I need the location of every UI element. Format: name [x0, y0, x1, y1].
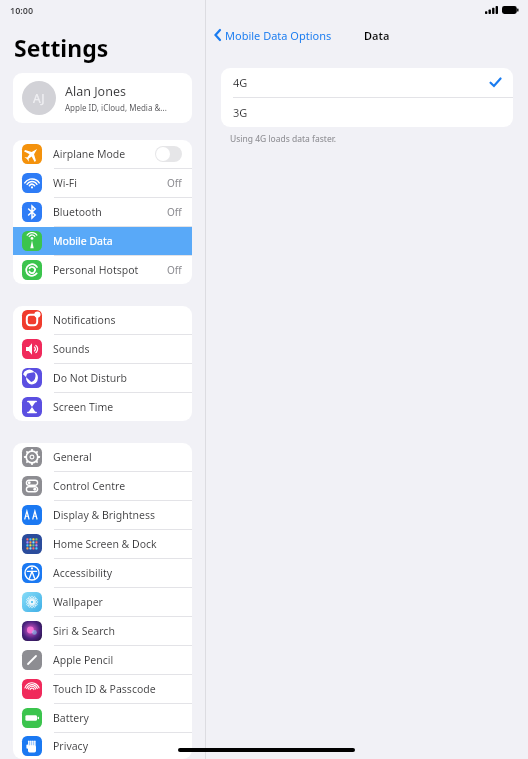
button[interactable]: Apple Pencil [13, 646, 192, 674]
staticText: Siri & Search [53, 624, 182, 638]
staticText: Off [167, 263, 182, 277]
button[interactable]: General [13, 443, 192, 471]
staticText: Wallpaper [53, 595, 182, 609]
staticText: Screen Time [53, 400, 182, 414]
staticText: Settings [14, 32, 109, 63]
staticText: Accessibility [53, 566, 182, 580]
button[interactable]: Accessibility [13, 559, 192, 587]
staticText: Notifications [53, 313, 182, 327]
staticText: Personal Hotspot [53, 263, 167, 277]
staticText: 3G [233, 105, 501, 120]
staticText: Airplane Mode [53, 147, 155, 161]
staticText: Alan Jones [65, 83, 126, 100]
button[interactable]: Sounds [13, 335, 192, 363]
button[interactable]: Notifications [13, 306, 192, 334]
button[interactable]: Airplane Mode [155, 146, 182, 162]
button[interactable]: Battery [13, 704, 192, 732]
staticText: Apple ID, iCloud, Media &... [65, 102, 167, 113]
button[interactable]: 4G [221, 68, 513, 97]
staticText: Mobile Data Options [225, 28, 332, 43]
staticText: Bluetooth [53, 205, 167, 219]
button[interactable]: Display & Brightness [13, 501, 192, 529]
staticText: AJ [33, 90, 45, 106]
button[interactable]: Personal Hotspot [13, 256, 192, 284]
staticText: Using 4G loads data faster. [230, 133, 337, 145]
button[interactable]: AJ [13, 73, 192, 123]
staticText: Control Centre [53, 479, 182, 493]
staticText: Mobile Data [53, 234, 182, 248]
staticText: Off [167, 176, 182, 190]
staticText: Data [364, 28, 390, 43]
button[interactable]: Bluetooth [13, 198, 192, 226]
staticText: Apple Pencil [53, 653, 182, 667]
staticText: Touch ID & Passcode [53, 682, 182, 696]
button[interactable]: Screen Time [13, 393, 192, 421]
button[interactable]: Do Not Disturb [13, 364, 192, 392]
staticText: Off [167, 205, 182, 219]
staticText: Home Screen & Dock [53, 537, 182, 551]
button[interactable]: Privacy [13, 733, 192, 759]
staticText: 10:00 [10, 4, 34, 16]
button[interactable]: 3G [221, 98, 513, 127]
button[interactable]: Wallpaper [13, 588, 192, 616]
button[interactable]: Mobile Data [13, 227, 192, 255]
staticText: General [53, 450, 182, 464]
staticText: Display & Brightness [53, 508, 182, 522]
staticText: 4G [233, 75, 490, 90]
staticText: Battery [53, 711, 182, 725]
staticText: Wi-Fi [53, 176, 167, 190]
button[interactable]: Home Screen & Dock [13, 530, 192, 558]
button[interactable]: Mobile Data Options [206, 22, 338, 48]
button[interactable]: Airplane Mode [13, 140, 192, 168]
button[interactable]: Touch ID & Passcode [13, 675, 192, 703]
staticText: Privacy [53, 739, 182, 753]
staticText: Sounds [53, 342, 182, 356]
button[interactable]: Wi-Fi [13, 169, 192, 197]
staticText: Do Not Disturb [53, 371, 182, 385]
button[interactable]: Control Centre [13, 472, 192, 500]
button[interactable]: Siri & Search [13, 617, 192, 645]
